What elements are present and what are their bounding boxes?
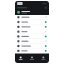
button[interactable] (15, 34, 49, 39)
button[interactable] (15, 49, 49, 53)
button[interactable] (15, 25, 49, 29)
button[interactable]: More (45, 7, 47, 9)
button[interactable]: Profile (38, 54, 49, 63)
button[interactable] (15, 20, 49, 25)
button[interactable]: Search (26, 54, 38, 63)
button[interactable] (15, 15, 49, 20)
button[interactable] (15, 44, 49, 49)
button[interactable]: Home (15, 54, 26, 63)
button[interactable] (15, 39, 49, 44)
button[interactable] (15, 29, 49, 34)
